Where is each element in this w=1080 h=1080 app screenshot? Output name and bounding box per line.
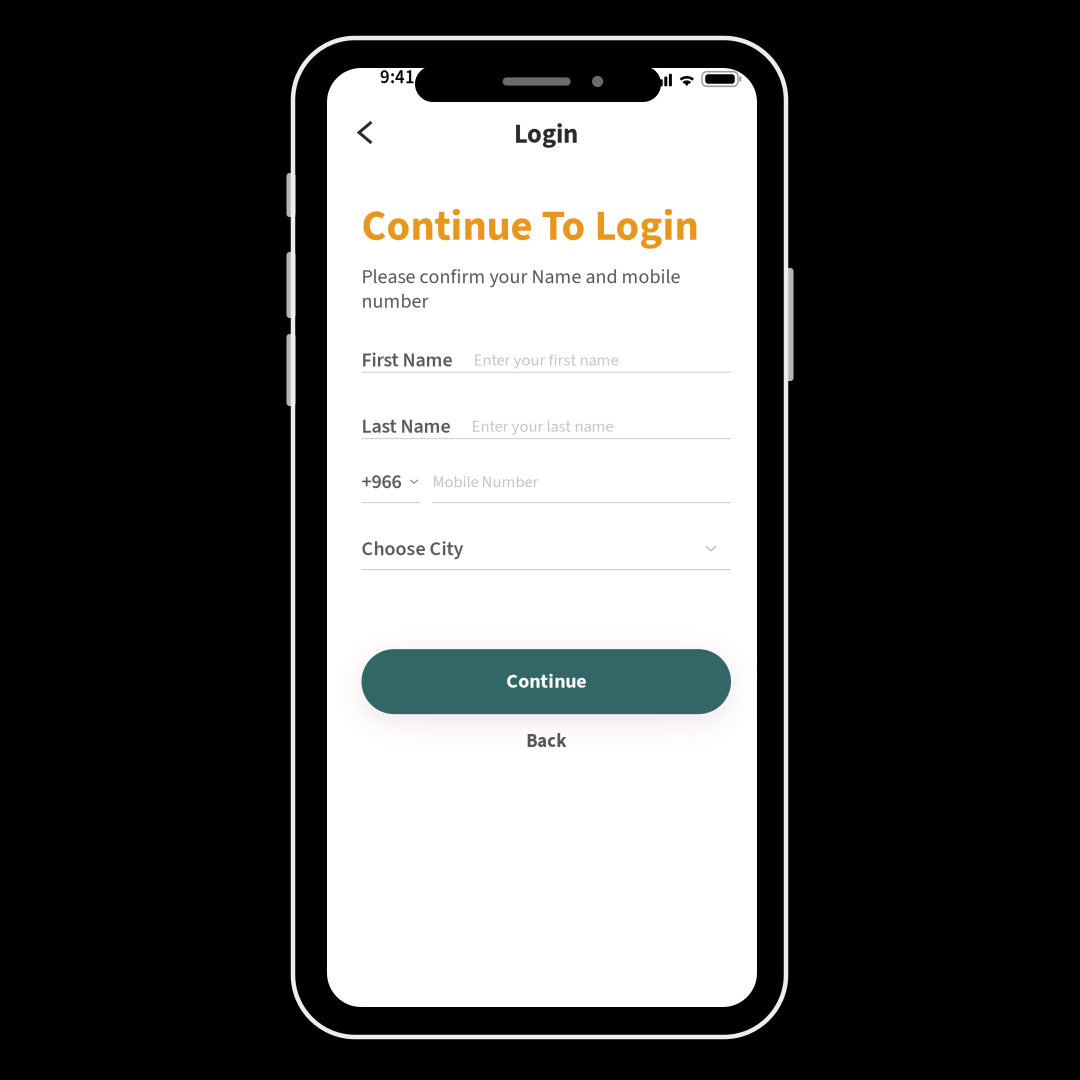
staticText: +966 xyxy=(361,468,401,496)
button[interactable]: Choose City xyxy=(361,539,731,570)
staticText: 9:41 xyxy=(380,64,415,91)
button[interactable]: Mobile Number xyxy=(432,472,731,503)
staticText: First Name xyxy=(361,346,452,374)
staticText: number xyxy=(361,287,428,316)
staticText: Mobile Number xyxy=(432,470,538,494)
button[interactable]: Last Name xyxy=(361,416,731,439)
button[interactable]: Continue xyxy=(361,649,731,714)
staticText: Enter your first name xyxy=(473,348,618,372)
staticText: Enter your last name xyxy=(471,415,613,438)
staticText: Continue xyxy=(506,667,586,696)
button[interactable]: Back xyxy=(343,110,387,154)
button[interactable]: +966 xyxy=(361,472,420,503)
staticText: Choose City xyxy=(361,535,463,563)
staticText: Login xyxy=(514,115,578,153)
staticText: Please confirm your Name and mobile xyxy=(361,263,680,291)
staticText: Back xyxy=(526,728,566,754)
button[interactable]: Back xyxy=(361,726,731,756)
staticText: Continue To Login xyxy=(361,196,698,257)
button[interactable]: First Name xyxy=(361,350,731,373)
staticText: Last Name xyxy=(361,412,450,441)
